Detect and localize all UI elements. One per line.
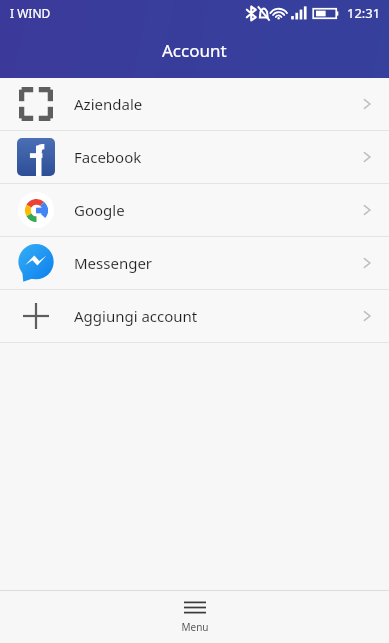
staticText: Facebook [74, 147, 142, 167]
button[interactable]: Messenger [0, 237, 389, 289]
button[interactable]: Google [0, 184, 389, 236]
staticText: Aziendale [74, 94, 143, 114]
button[interactable]: Facebook [0, 131, 389, 183]
staticText: Google [74, 200, 125, 220]
button[interactable]: Menu [0, 591, 389, 643]
staticText: Account [162, 39, 227, 62]
staticText: Messenger [74, 253, 153, 273]
staticText: I WIND [10, 5, 51, 21]
button[interactable]: Aziendale [0, 78, 389, 130]
staticText: 12:31 [347, 4, 381, 22]
staticText: Aggiungi account [74, 306, 198, 326]
staticText: Menu [181, 620, 209, 634]
button[interactable]: Aggiungi account [0, 290, 389, 342]
